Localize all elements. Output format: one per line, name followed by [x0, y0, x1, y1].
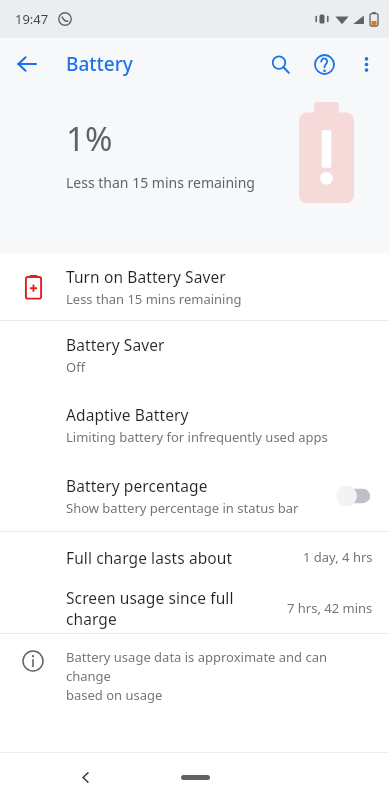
- staticText: Adaptive Battery: [66, 404, 189, 425]
- button[interactable]: Back: [70, 762, 100, 792]
- button[interactable]: Adaptive Battery: [0, 389, 389, 460]
- staticText: Battery usage data is approximate and ca…: [66, 648, 375, 704]
- button[interactable]: Back: [7, 44, 47, 84]
- button[interactable]: Battery Saver: [0, 321, 389, 389]
- staticText: 1 day, 4 hrs: [303, 548, 373, 566]
- button[interactable]: Full charge lasts about: [0, 532, 389, 582]
- button[interactable]: Battery percentage: [0, 460, 389, 531]
- staticText: Battery Saver: [66, 334, 165, 355]
- button[interactable]: More options: [346, 44, 386, 84]
- button[interactable]: Turn on Battery Saver: [0, 253, 389, 320]
- button[interactable]: Screen usage since full charge: [0, 582, 389, 633]
- button[interactable]: Help: [302, 42, 346, 86]
- staticText: Full charge lasts about: [66, 547, 233, 568]
- staticText: Less than 15 mins remaining: [66, 173, 255, 192]
- button[interactable]: Home: [165, 767, 225, 787]
- staticText: Battery percentage: [66, 475, 208, 496]
- staticText: Turn on Battery Saver: [66, 266, 226, 287]
- staticText: 19:47: [15, 10, 49, 28]
- button[interactable]: Search: [258, 42, 302, 86]
- staticText: 7 hrs, 42 mins: [287, 599, 373, 617]
- staticText: Less than 15 mins remaining: [66, 290, 242, 308]
- staticText: Limiting battery for infrequently used a…: [66, 428, 328, 446]
- staticText: Show battery percentage in status bar: [66, 499, 299, 517]
- staticText: 1%: [66, 116, 113, 161]
- staticText: Off: [66, 358, 86, 376]
- staticText: Battery: [66, 51, 133, 77]
- staticText: Screen usage since full charge: [66, 587, 287, 629]
